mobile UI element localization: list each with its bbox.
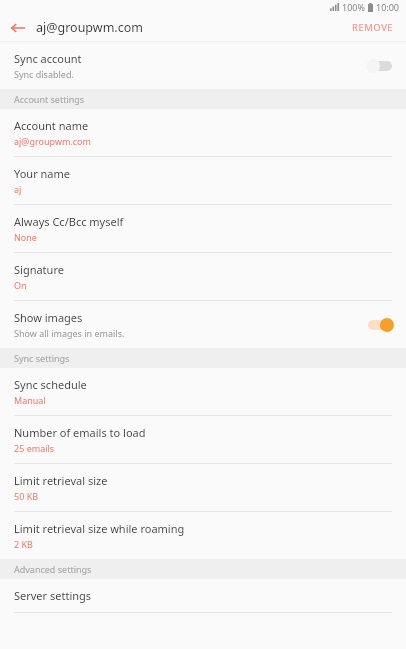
staticText: REMOVE bbox=[352, 21, 394, 34]
staticText: Limit retrieval size while roaming bbox=[14, 521, 185, 536]
staticText: Limit retrieval size bbox=[14, 473, 108, 488]
staticText: Server settings bbox=[14, 588, 92, 603]
button[interactable]: Sync account bbox=[0, 42, 406, 89]
staticText: Show images bbox=[14, 310, 83, 325]
button[interactable]: Number of emails to load bbox=[0, 416, 406, 463]
staticText: Your name bbox=[14, 166, 70, 181]
button[interactable]: REMOVE bbox=[340, 14, 406, 41]
button[interactable]: Always Cc/Bcc myself bbox=[0, 205, 406, 252]
staticText: Sync account bbox=[14, 51, 82, 66]
staticText: Sync disabled. bbox=[14, 68, 74, 80]
button[interactable]: Switch off bbox=[366, 57, 394, 75]
button[interactable]: Server settings bbox=[0, 579, 406, 612]
staticText: aj@groupwm.com bbox=[36, 19, 143, 36]
staticText: Advanced settings bbox=[14, 563, 92, 575]
button[interactable]: Switch on bbox=[366, 316, 394, 334]
staticText: Sync schedule bbox=[14, 377, 87, 392]
button[interactable]: Signature bbox=[0, 253, 406, 300]
staticText: aj bbox=[14, 183, 22, 195]
staticText: Show all images in emails. bbox=[14, 327, 125, 339]
button[interactable]: Account name bbox=[0, 109, 406, 156]
staticText: Always Cc/Bcc myself bbox=[14, 214, 124, 229]
staticText: Number of emails to load bbox=[14, 425, 146, 440]
staticText: On bbox=[14, 279, 27, 291]
staticText: 25 emails bbox=[14, 442, 55, 454]
staticText: None bbox=[14, 231, 37, 243]
staticText: Manual bbox=[14, 394, 46, 406]
button[interactable]: Show images bbox=[0, 301, 406, 348]
staticText: 2 KB bbox=[14, 538, 33, 550]
button[interactable]: Limit retrieval size while roaming bbox=[0, 512, 406, 559]
button[interactable]: Back bbox=[0, 14, 36, 41]
staticText: Signature bbox=[14, 262, 64, 277]
button[interactable]: Sync schedule bbox=[0, 368, 406, 415]
button[interactable]: Limit retrieval size bbox=[0, 464, 406, 511]
staticText: Account settings bbox=[14, 93, 85, 105]
staticText: 50 KB bbox=[14, 490, 39, 502]
staticText: Sync settings bbox=[14, 352, 70, 364]
button[interactable]: Your name bbox=[0, 157, 406, 204]
staticText: Account name bbox=[14, 118, 89, 133]
staticText: aj@groupwm.com bbox=[14, 135, 91, 147]
staticText: 10:00 bbox=[376, 1, 400, 13]
staticText: 100% bbox=[342, 1, 365, 13]
